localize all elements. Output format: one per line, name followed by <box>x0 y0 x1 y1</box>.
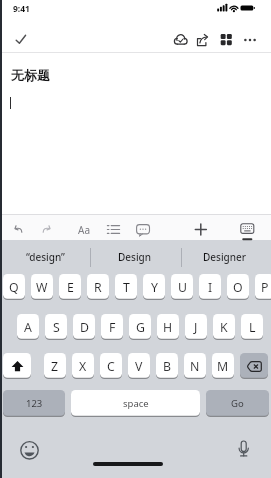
button[interactable] <box>38 219 59 240</box>
staticText: Q <box>9 279 19 296</box>
staticText: Aa <box>78 223 90 237</box>
staticText: A <box>24 319 32 336</box>
staticText: T <box>123 279 130 296</box>
staticText: X <box>79 358 87 375</box>
button[interactable] <box>240 353 268 379</box>
button[interactable]: J <box>185 314 207 340</box>
staticText: G <box>136 319 145 336</box>
staticText: J <box>194 319 198 336</box>
button[interactable] <box>194 31 213 49</box>
button[interactable]: B <box>156 353 178 379</box>
staticText: 无标题 <box>11 67 50 83</box>
staticText: Z <box>51 358 59 375</box>
staticText: V <box>135 358 143 375</box>
button[interactable]: 123 <box>3 390 65 417</box>
staticText: C <box>107 358 115 375</box>
button[interactable]: M <box>212 353 234 379</box>
staticText: H <box>163 319 173 336</box>
staticText: I <box>208 279 213 296</box>
button[interactable] <box>236 219 258 240</box>
staticText: 123 <box>26 397 43 410</box>
staticText: Designer <box>203 250 247 264</box>
button[interactable]: V <box>128 353 150 379</box>
button[interactable] <box>232 437 255 460</box>
staticText: S <box>53 319 60 336</box>
button[interactable] <box>132 219 154 240</box>
staticText: E <box>67 279 74 296</box>
staticText: Design <box>118 250 152 264</box>
staticText: R <box>94 279 102 296</box>
button[interactable] <box>171 31 190 49</box>
button[interactable]: F <box>101 314 123 340</box>
staticText: Y <box>151 279 158 296</box>
staticText: F <box>109 319 116 336</box>
button[interactable]: space <box>71 390 200 417</box>
staticText: B <box>163 358 171 375</box>
staticText: D <box>80 319 89 336</box>
button[interactable] <box>190 219 211 240</box>
button[interactable]: Z <box>44 353 66 379</box>
button[interactable] <box>10 30 30 50</box>
button[interactable] <box>74 219 96 240</box>
button[interactable] <box>103 219 124 240</box>
button[interactable]: X <box>72 353 94 379</box>
button[interactable] <box>217 31 236 49</box>
button[interactable]: K <box>213 314 235 340</box>
button[interactable]: W <box>31 274 53 300</box>
button[interactable]: R <box>87 274 109 300</box>
button[interactable] <box>241 31 260 49</box>
button[interactable] <box>3 353 31 379</box>
button[interactable]: N <box>184 353 206 379</box>
staticText: Go <box>231 397 244 410</box>
button[interactable]: Go <box>206 390 269 417</box>
button[interactable]: A <box>17 314 39 340</box>
button[interactable]: S <box>45 314 67 340</box>
button[interactable]: H <box>157 314 179 340</box>
staticText: K <box>220 319 228 336</box>
staticText: M <box>217 358 229 375</box>
staticText: O <box>233 279 243 296</box>
button[interactable]: D <box>73 314 95 340</box>
staticText: U <box>178 279 187 296</box>
button[interactable] <box>18 439 41 462</box>
button[interactable]: P <box>255 274 271 300</box>
button[interactable]: I <box>199 274 221 300</box>
button[interactable]: G <box>129 314 151 340</box>
button[interactable]: Y <box>143 274 165 300</box>
button[interactable]: “design” <box>0 241 90 273</box>
staticText: “design” <box>26 250 65 264</box>
button[interactable]: E <box>59 274 81 300</box>
button[interactable]: Designer <box>180 241 270 273</box>
staticText: L <box>249 319 256 336</box>
staticText: space <box>123 397 149 410</box>
button[interactable]: T <box>115 274 137 300</box>
staticText: 9:41 <box>13 3 30 15</box>
staticText: N <box>190 358 200 375</box>
staticText: P <box>261 279 269 296</box>
button[interactable]: Q <box>3 274 25 300</box>
staticText: W <box>36 279 48 296</box>
button[interactable]: O <box>227 274 249 300</box>
button[interactable]: C <box>100 353 122 379</box>
button[interactable]: U <box>171 274 193 300</box>
button[interactable]: L <box>241 314 263 340</box>
button[interactable]: Design <box>90 241 180 273</box>
button[interactable] <box>8 219 29 240</box>
